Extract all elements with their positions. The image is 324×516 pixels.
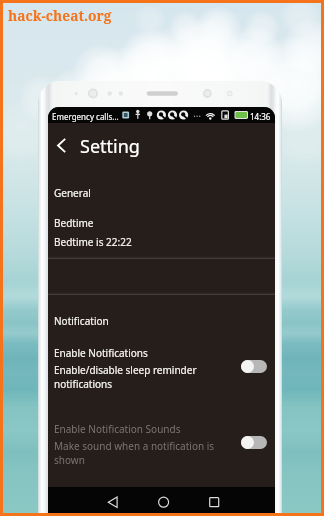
staticText: Enable Notifications — [54, 346, 148, 360]
staticText: General — [54, 186, 91, 200]
staticText: Enable Notification Sounds — [54, 422, 181, 436]
button[interactable]: Home — [147, 487, 176, 516]
button[interactable]: Recents — [211, 487, 240, 516]
button[interactable]: Back — [48, 129, 74, 161]
button[interactable]: Enable Notification Sounds — [48, 421, 275, 475]
button[interactable]: Bedtime — [48, 213, 275, 253]
staticText: Emergency calls... — [52, 111, 119, 122]
button[interactable]: Toggle — [241, 359, 267, 373]
staticText: Bedtime is 22:22 — [54, 235, 132, 249]
staticText: Make sound when a notification is shown — [54, 439, 215, 467]
button[interactable]: Toggle — [241, 435, 267, 449]
staticText: Enable/disable sleep reminder notificati… — [54, 363, 197, 391]
staticText: hack-cheat.org — [8, 6, 112, 25]
staticText: Setting — [80, 134, 140, 159]
staticText: Bedtime — [54, 216, 94, 230]
staticText: 14:36 — [250, 111, 271, 122]
button[interactable]: Back — [83, 487, 112, 516]
button[interactable]: Enable Notifications — [48, 345, 275, 399]
staticText: Notification — [54, 314, 109, 328]
